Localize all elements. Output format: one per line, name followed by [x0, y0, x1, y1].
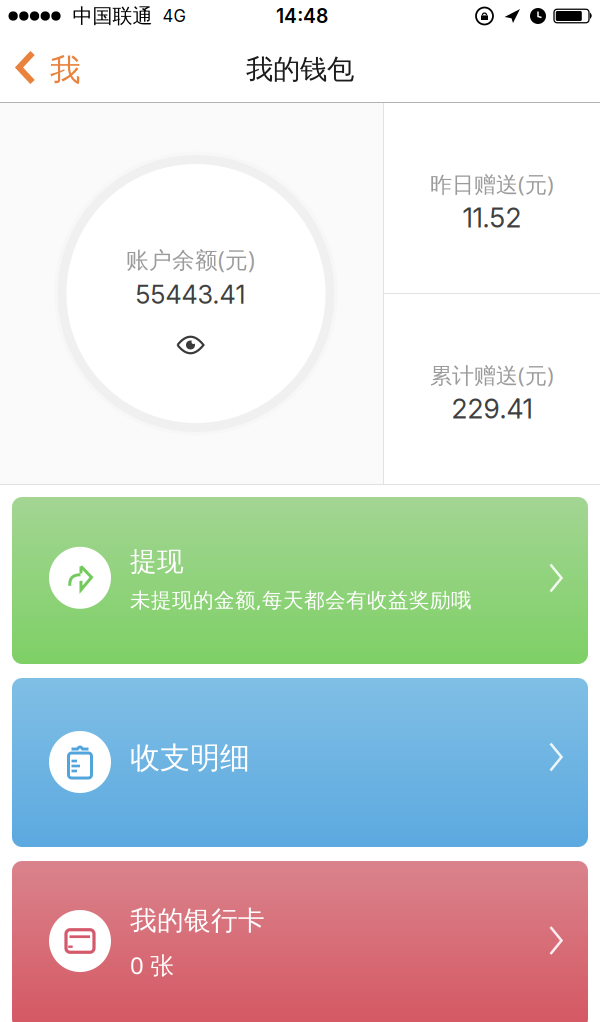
button[interactable]: 返回	[0, 52, 81, 90]
staticText: 4G	[163, 6, 186, 26]
staticText: 我的钱包	[246, 52, 354, 87]
staticText: 中国联通	[73, 3, 153, 29]
staticText: 我	[50, 51, 81, 89]
staticText: 收支明细	[130, 739, 250, 777]
staticText: 11.52	[462, 202, 521, 234]
staticText: 提现	[130, 545, 184, 578]
staticText: 账户余额(元)	[126, 244, 255, 275]
staticText: 累计赠送(元)	[430, 360, 554, 390]
staticText: 我的银行卡	[130, 904, 265, 937]
staticText: 229.41	[451, 393, 532, 425]
staticText: 55443.41	[135, 279, 245, 310]
staticText: 0 张	[130, 949, 174, 981]
staticText: 未提现的金额,每天都会有收益奖励哦	[130, 585, 472, 613]
staticText: 昨日赠送(元)	[430, 169, 554, 199]
staticText: 14:48	[276, 4, 328, 28]
button[interactable]: 隐藏余额	[176, 317, 204, 354]
button[interactable]: 收支明细	[12, 678, 588, 847]
button[interactable]: 我的银行卡	[12, 861, 588, 1022]
button[interactable]: 提现	[12, 497, 588, 664]
